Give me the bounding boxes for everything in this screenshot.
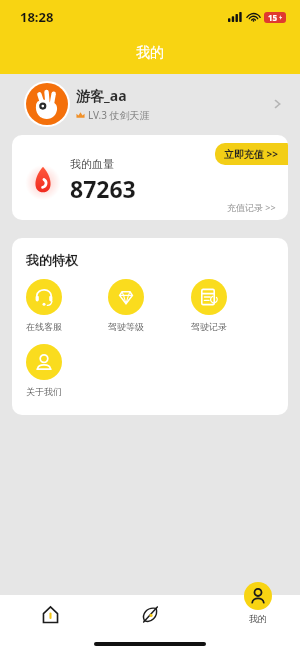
button[interactable]: Home — [0, 595, 100, 652]
button[interactable]: 游客_aa — [0, 78, 300, 130]
staticText: 充值记录 >> — [227, 201, 276, 213]
staticText: 我的 — [136, 44, 164, 62]
staticText: 我的特权 — [26, 252, 78, 268]
staticText: 关于我们 — [26, 386, 62, 397]
staticText: 我的 — [249, 613, 267, 624]
button[interactable]: 充值记录 >> — [227, 201, 288, 220]
staticText: 驾驶记录 — [191, 321, 227, 332]
button[interactable]: Profile avatar — [26, 83, 68, 125]
staticText: 87263 — [70, 173, 136, 204]
button[interactable]: Discover — [100, 595, 200, 652]
button[interactable]: 关于我们 — [26, 344, 108, 397]
button[interactable]: 在线客服 — [26, 279, 108, 332]
staticText: 在线客服 — [26, 321, 62, 332]
staticText: 驾驶等级 — [108, 321, 144, 332]
staticText: 游客_aa — [76, 86, 127, 105]
staticText: 立即充值 >> — [224, 147, 279, 161]
button[interactable]: 驾驶等级 — [108, 279, 191, 332]
button[interactable]: 我的 — [244, 582, 272, 624]
staticText: 18:28 — [20, 8, 54, 26]
button[interactable]: 驾驶记录 — [191, 279, 274, 332]
staticText: LV.3 仗剑天涯 — [88, 108, 150, 122]
button[interactable]: 立即充值 >> — [215, 143, 288, 165]
staticText: 我的血量 — [70, 157, 114, 171]
staticText: 15 — [268, 12, 278, 23]
